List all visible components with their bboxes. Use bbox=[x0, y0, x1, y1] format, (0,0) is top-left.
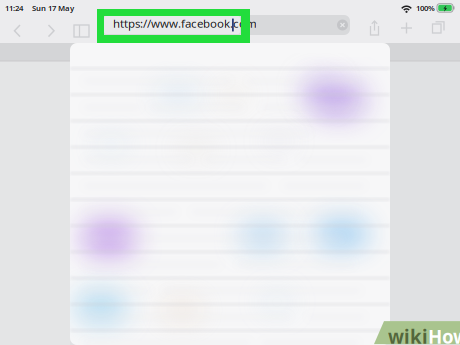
button[interactable]: New tab bbox=[399, 19, 415, 37]
button[interactable]: Share bbox=[367, 18, 383, 38]
button[interactable]: Forward bbox=[42, 20, 62, 42]
staticText: https://www.facebook.com bbox=[113, 15, 257, 31]
staticText: How bbox=[428, 324, 460, 345]
staticText: 100% bbox=[416, 3, 435, 13]
button[interactable]: Show sidebar bbox=[72, 20, 92, 42]
staticText: Sun 17 May bbox=[32, 3, 74, 13]
button[interactable]: Back bbox=[8, 20, 28, 42]
button[interactable]: https://www.facebook.com bbox=[100, 15, 350, 35]
staticText: 11:24 bbox=[5, 3, 23, 13]
button[interactable]: Show all tabs bbox=[431, 19, 449, 37]
staticText: wiki bbox=[388, 324, 428, 345]
